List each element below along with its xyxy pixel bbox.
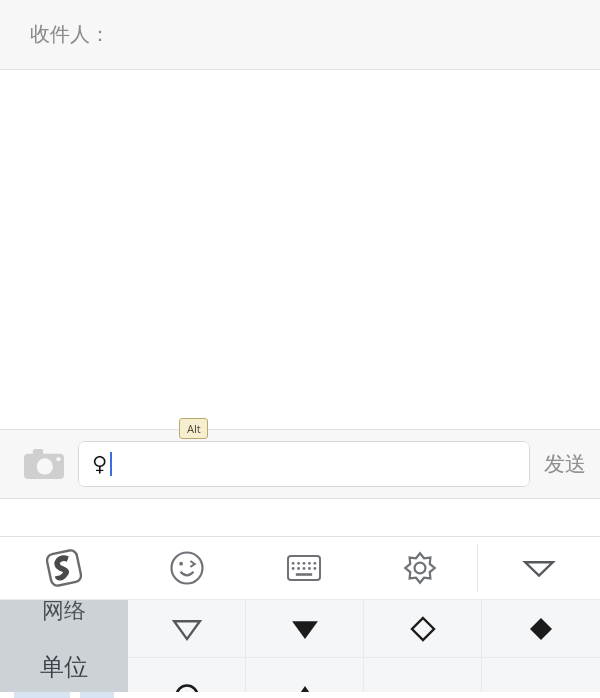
button[interactable]: 收件人： (0, 0, 600, 69)
button[interactable]: Settings (362, 537, 477, 599)
button[interactable]: 发送 (544, 441, 586, 487)
staticText: 发送 (544, 451, 586, 477)
staticText: 网络 (42, 597, 86, 625)
button[interactable]: Hide keyboard (478, 537, 600, 599)
staticText: 单位 (40, 652, 88, 682)
button[interactable]: 单位 (0, 642, 128, 692)
staticText: ♀ (92, 452, 108, 476)
staticText: 收件人： (30, 22, 110, 47)
button[interactable] (128, 600, 246, 657)
button[interactable] (246, 600, 364, 657)
button[interactable]: Camera (18, 438, 70, 490)
staticText: Alt (187, 421, 201, 436)
button[interactable]: 网络 (0, 600, 128, 642)
button[interactable] (246, 658, 364, 692)
button[interactable]: Keyboard (246, 537, 362, 599)
button[interactable]: ♀ (78, 441, 530, 487)
button[interactable] (364, 600, 482, 657)
button[interactable] (128, 658, 246, 692)
button[interactable]: Sogou input method (0, 537, 128, 599)
button[interactable] (482, 600, 600, 657)
button[interactable]: Emoji (128, 537, 246, 599)
